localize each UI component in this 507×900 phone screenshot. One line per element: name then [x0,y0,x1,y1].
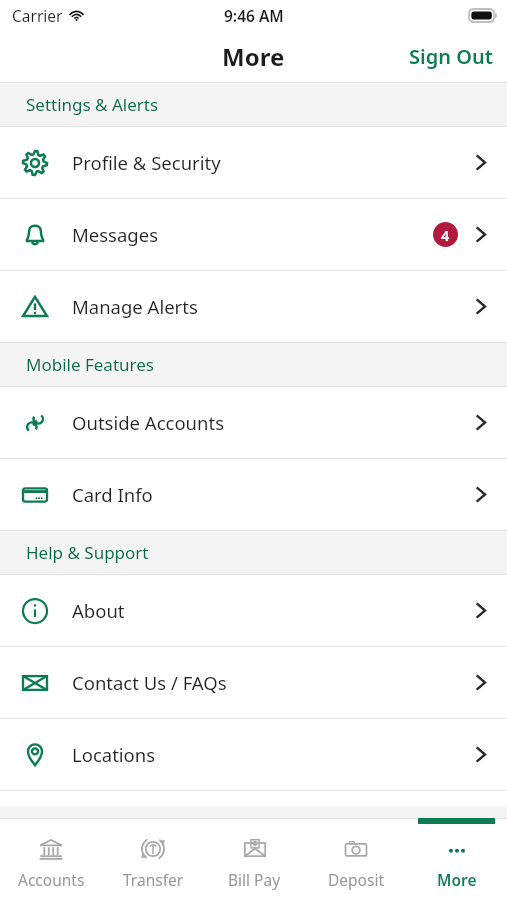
staticText: Outside Accounts [72,410,224,435]
staticText: Bill Pay [228,869,281,890]
button[interactable]: Profile & Security [0,127,507,198]
button[interactable]: Sign Out [395,37,507,76]
staticText: Help & Support [26,541,149,564]
button[interactable]: Outside Accounts [0,387,507,458]
staticText: Accounts [18,869,85,890]
staticText: Manage Alerts [72,294,198,319]
button[interactable]: Deposit [305,824,406,900]
button[interactable]: Manage Alerts [0,271,507,342]
staticText: Locations [72,742,156,767]
button[interactable]: Transfer [102,824,204,900]
staticText: Carrier [12,5,63,26]
staticText: Deposit [328,869,384,890]
staticText: More [222,40,285,73]
staticText: Card Info [72,482,153,507]
staticText: Sign Out [409,43,493,70]
button[interactable]: Locations [0,719,507,790]
button[interactable]: Bill Pay [204,824,305,900]
button[interactable]: Card Info [0,459,507,530]
staticText: 4 [441,225,450,245]
staticText: Settings & Alerts [26,93,159,116]
staticText: Transfer [123,869,184,890]
staticText: Mobile Features [26,353,154,376]
button[interactable]: Messages [0,199,507,270]
staticText: About [72,598,125,623]
button[interactable]: About [0,575,507,646]
staticText: Contact Us / FAQs [72,670,227,695]
staticText: Profile & Security [72,150,221,175]
staticText: More [437,869,477,890]
button[interactable]: More [406,824,507,900]
staticText: Messages [72,222,158,247]
button[interactable]: Contact Us / FAQs [0,647,507,718]
staticText: 9:46 AM [224,5,284,26]
button[interactable]: Accounts [0,824,102,900]
